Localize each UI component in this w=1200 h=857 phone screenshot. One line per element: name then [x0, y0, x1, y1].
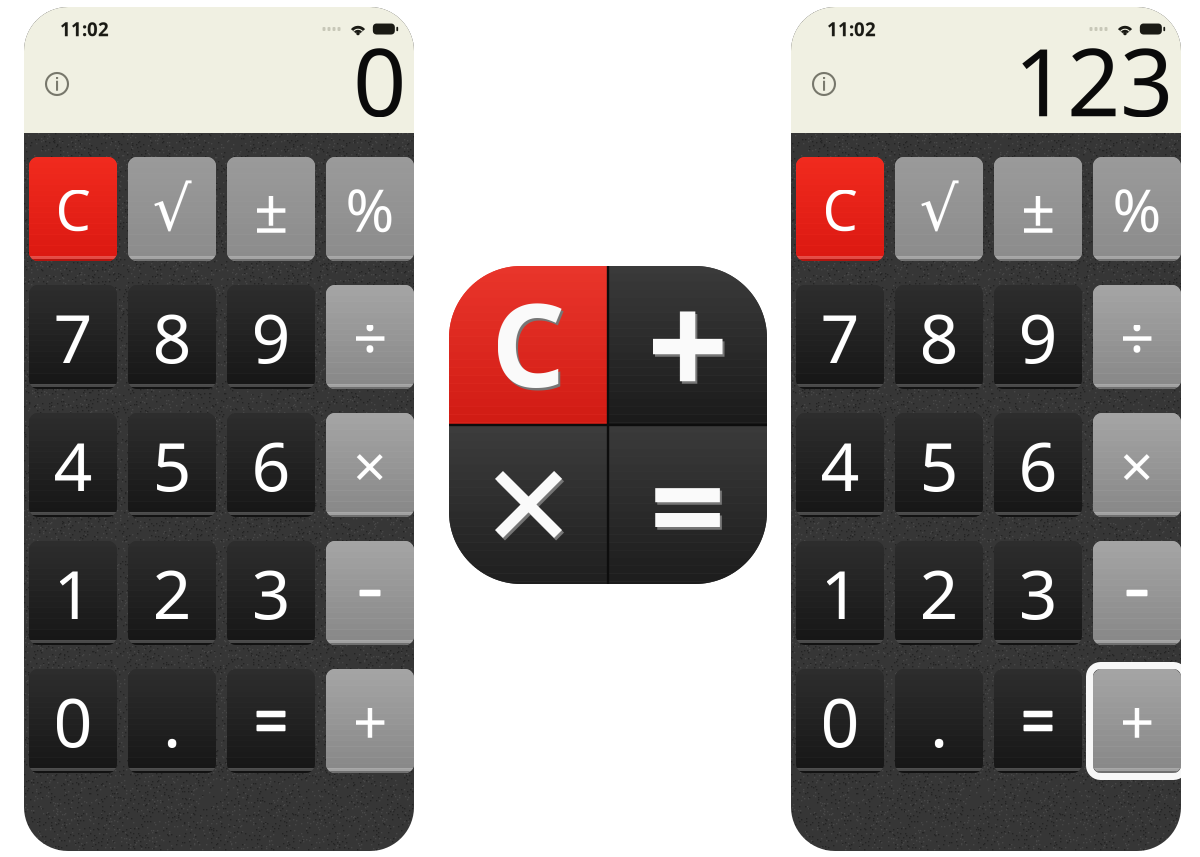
button[interactable]: 8	[128, 285, 216, 389]
staticText: i	[54, 72, 59, 95]
button[interactable]: 9	[994, 285, 1082, 389]
staticText: 2	[152, 548, 191, 638]
staticText: 8	[919, 292, 958, 382]
staticText: 1	[53, 548, 92, 638]
staticText: 123	[1014, 18, 1173, 142]
staticText: =	[649, 414, 725, 591]
staticText: C	[491, 266, 565, 419]
staticText: 2	[919, 548, 958, 638]
button[interactable]: ×	[326, 413, 414, 517]
button[interactable]: ÷	[1093, 285, 1181, 389]
button[interactable]: 1	[796, 541, 884, 645]
staticText: √	[919, 174, 958, 244]
button[interactable]: =	[994, 669, 1082, 773]
staticText: ±	[253, 168, 288, 250]
button[interactable]: 3	[227, 541, 315, 645]
staticText: ✕	[482, 444, 578, 574]
button[interactable]: =	[227, 669, 315, 773]
button[interactable]: 8	[895, 285, 983, 389]
button[interactable]: 1	[29, 541, 117, 645]
staticText: %	[345, 170, 394, 248]
button[interactable]: √	[128, 157, 216, 261]
button[interactable]: ×	[1093, 413, 1181, 517]
staticText: 11:02	[60, 17, 109, 41]
staticText: 5	[152, 420, 191, 510]
staticText: +	[1119, 680, 1154, 762]
button[interactable]: -	[326, 541, 414, 645]
staticText: 8	[152, 292, 191, 382]
staticText: 4	[53, 420, 92, 510]
staticText: 9	[1018, 292, 1057, 382]
button[interactable]: Info	[42, 69, 72, 99]
staticText: C	[493, 269, 567, 421]
staticText: 3	[1018, 548, 1057, 638]
button[interactable]: Calculator app icon	[449, 266, 767, 584]
staticText: 0	[353, 18, 406, 142]
button[interactable]: +	[326, 669, 414, 773]
button[interactable]: ÷	[326, 285, 414, 389]
staticText: =	[651, 416, 727, 594]
staticText: +	[352, 680, 387, 762]
button[interactable]: 5	[128, 413, 216, 517]
staticText: C	[55, 172, 90, 246]
button[interactable]: 7	[29, 285, 117, 389]
staticText: ×	[1120, 426, 1154, 504]
staticText: 0	[820, 676, 859, 766]
button[interactable]: 3	[994, 541, 1082, 645]
button[interactable]: %	[1093, 157, 1181, 261]
staticText: 1	[820, 548, 859, 638]
staticText: +	[648, 248, 730, 440]
staticText: 7	[53, 292, 92, 382]
staticText: .	[930, 676, 948, 766]
staticText: √	[152, 174, 191, 244]
button[interactable]: .	[128, 669, 216, 773]
button[interactable]: 7	[796, 285, 884, 389]
button[interactable]: 0	[29, 669, 117, 773]
button[interactable]: C	[29, 157, 117, 261]
staticText: 3	[251, 548, 290, 638]
button[interactable]: %	[326, 157, 414, 261]
staticText: ✕	[480, 441, 576, 571]
staticText: +	[646, 246, 728, 437]
staticText: i	[821, 72, 826, 95]
staticText: 4	[820, 420, 859, 510]
button[interactable]: +	[1093, 669, 1181, 773]
button[interactable]: 2	[895, 541, 983, 645]
staticText: 11:02	[827, 17, 876, 41]
button[interactable]: .	[895, 669, 983, 773]
button[interactable]: 5	[895, 413, 983, 517]
button[interactable]: 2	[128, 541, 216, 645]
button[interactable]: √	[895, 157, 983, 261]
button[interactable]: 9	[227, 285, 315, 389]
staticText: 9	[251, 292, 290, 382]
staticText: 6	[1018, 420, 1057, 510]
button[interactable]: 4	[796, 413, 884, 517]
staticText: %	[1112, 170, 1161, 248]
staticText: 5	[919, 420, 958, 510]
staticText: C	[822, 172, 857, 246]
button[interactable]: -	[1093, 541, 1181, 645]
button[interactable]: C	[796, 157, 884, 261]
staticText: ±	[1020, 168, 1055, 250]
button[interactable]: 4	[29, 413, 117, 517]
staticText: ÷	[1119, 296, 1154, 378]
button[interactable]: 0	[796, 669, 884, 773]
staticText: ÷	[352, 296, 387, 378]
button[interactable]: 6	[227, 413, 315, 517]
button[interactable]: Info	[809, 69, 839, 99]
button[interactable]: ±	[227, 157, 315, 261]
button[interactable]: 6	[994, 413, 1082, 517]
staticText: .	[163, 676, 181, 766]
staticText: 0	[53, 676, 92, 766]
staticText: ×	[353, 426, 387, 504]
staticText: 7	[820, 292, 859, 382]
button[interactable]: ±	[994, 157, 1082, 261]
staticText: 6	[251, 420, 290, 510]
